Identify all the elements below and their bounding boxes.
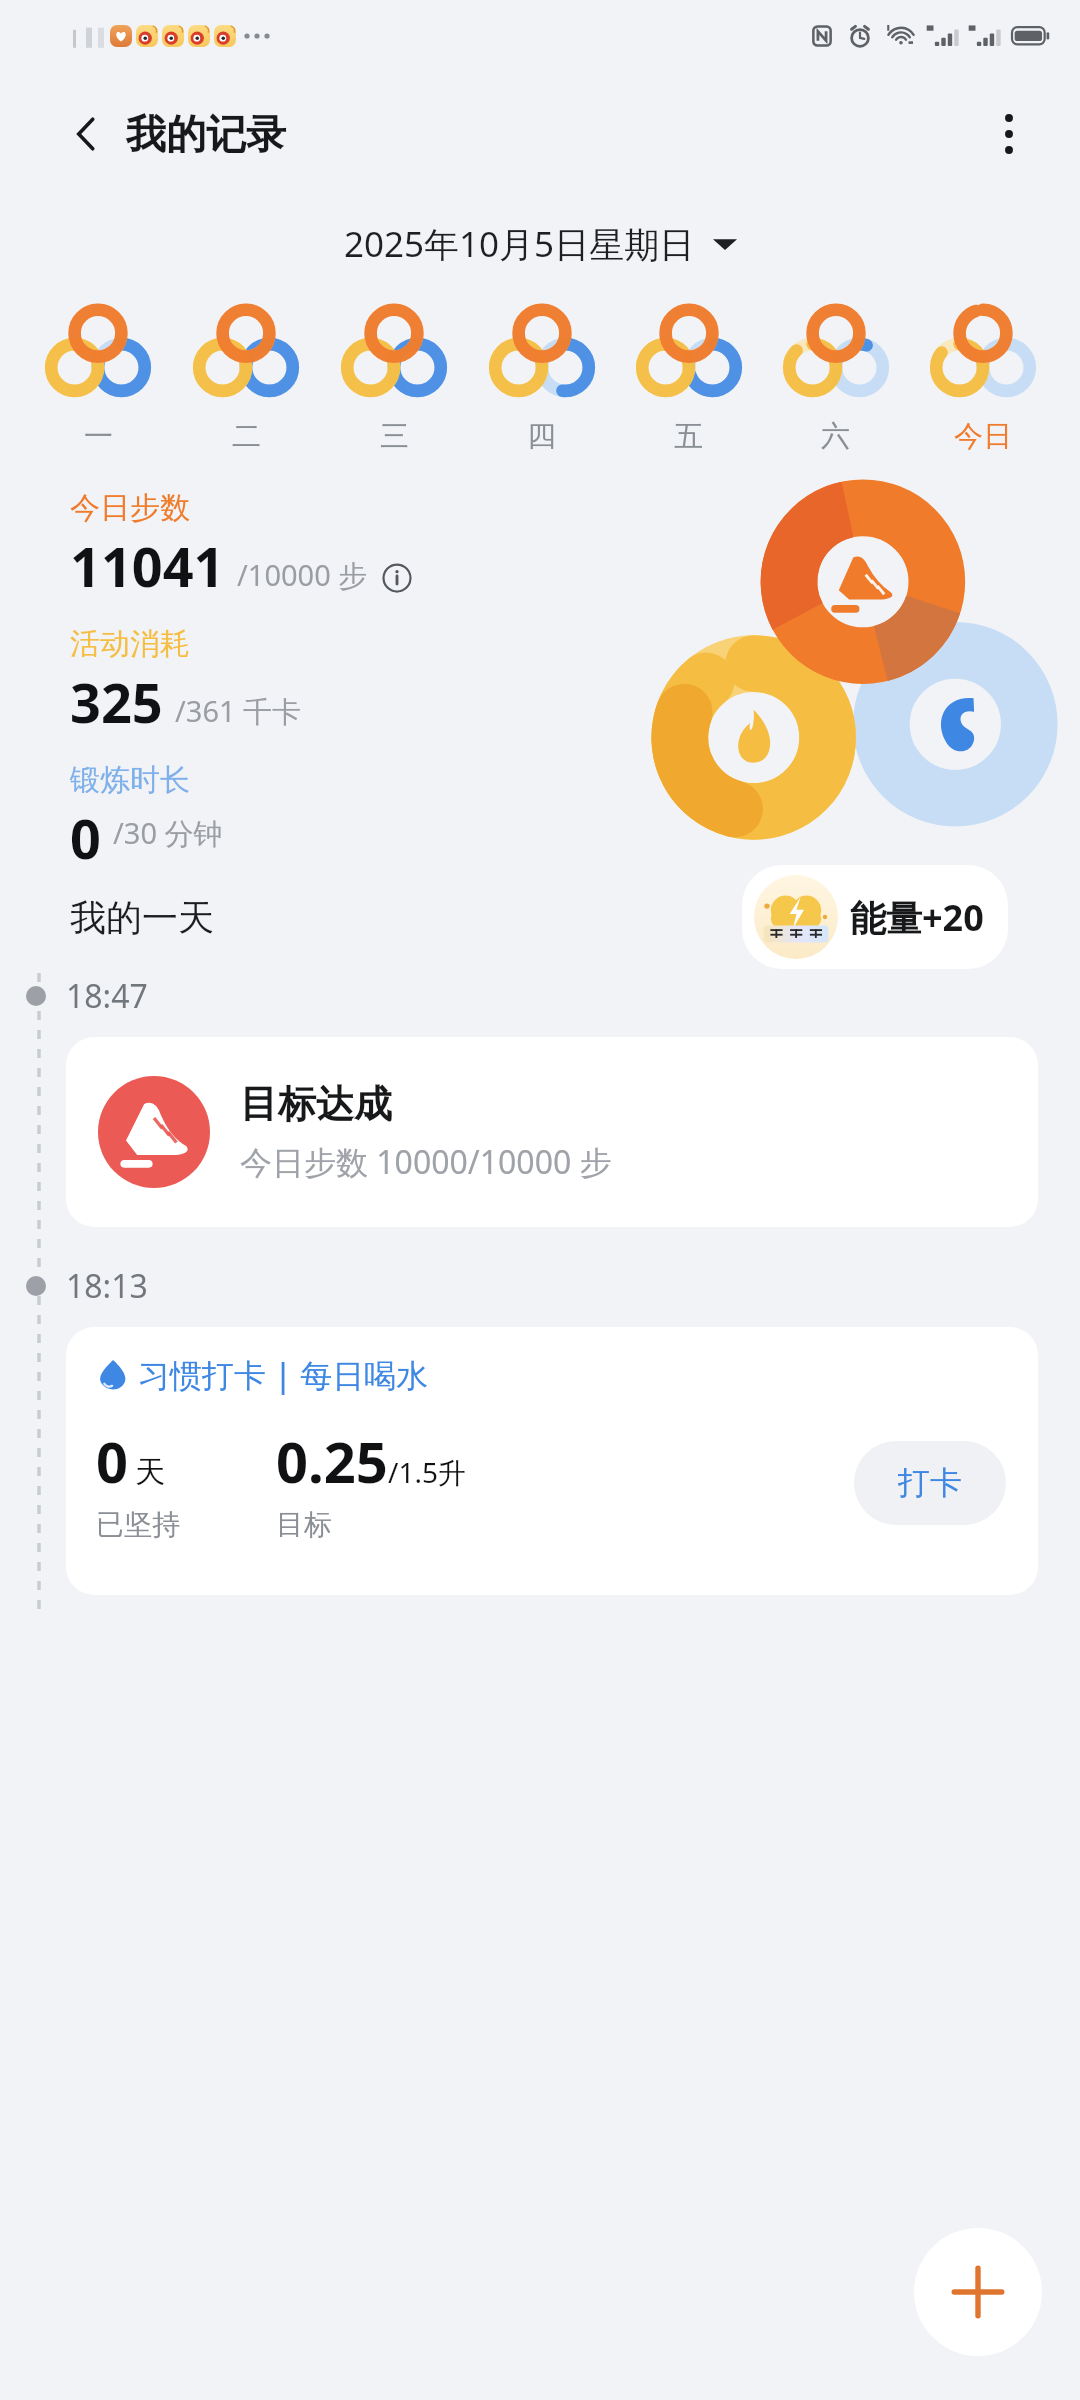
staticText: 18:13 (66, 1264, 148, 1308)
button[interactable]: 习惯打卡 | 每日喝水 (66, 1327, 1038, 1595)
button[interactable]: 目标达成 (66, 1037, 1038, 1227)
staticText: 三 (380, 418, 409, 455)
staticText: 0 (96, 1423, 129, 1499)
button[interactable]: 能量+20 (742, 865, 1008, 969)
staticText: 五 (674, 418, 703, 455)
button[interactable]: 六 (762, 302, 909, 455)
staticText: 18:47 (66, 974, 148, 1018)
staticText: 目标达成 (240, 1080, 392, 1128)
staticText: 一 (84, 418, 113, 455)
button[interactable]: 打卡 (854, 1441, 1006, 1525)
staticText: 0.25 (276, 1423, 388, 1499)
staticText: /10000 步 (237, 555, 368, 595)
button[interactable]: 2025年10月5日星期日 (0, 196, 1080, 292)
staticText: 今日 (954, 418, 1012, 455)
staticText: 目标 (276, 1507, 332, 1542)
staticText: 11041 (70, 529, 225, 603)
staticText: 已坚持 (96, 1507, 180, 1542)
button[interactable]: Back (56, 103, 118, 165)
staticText: 四 (527, 418, 556, 455)
staticText: 锻炼时长 (70, 761, 190, 799)
button[interactable]: Activity rings (634, 481, 1054, 861)
button[interactable]: Info (382, 563, 412, 593)
staticText: 0 (70, 801, 101, 861)
button[interactable]: 二 (172, 302, 320, 455)
staticText: 今日步数 (70, 489, 190, 527)
staticText: 2025年10月5日星期日 (344, 220, 695, 268)
button[interactable]: 四 (468, 302, 615, 455)
staticText: /361 千卡 (175, 691, 302, 731)
staticText: 二 (232, 418, 261, 455)
button[interactable]: 今日 (909, 302, 1056, 455)
button[interactable]: 五 (615, 302, 762, 455)
staticText: 我的记录 (126, 109, 286, 159)
button[interactable]: 三 (320, 302, 468, 455)
staticText: 天 (135, 1453, 165, 1491)
staticText: /1.5升 (388, 1453, 466, 1491)
button[interactable]: More options (978, 103, 1040, 165)
staticText: 习惯打卡 | 每日喝水 (138, 1353, 429, 1397)
staticText: 325 (70, 665, 163, 739)
staticText: 打卡 (898, 1463, 962, 1503)
button[interactable]: Add record (914, 2228, 1042, 2356)
button[interactable]: 一 (24, 302, 172, 455)
staticText: 活动消耗 (70, 625, 190, 663)
staticText: /30 分钟 (113, 813, 223, 853)
staticText: 我的一天 (70, 895, 214, 940)
staticText: 今日步数 10000/10000 步 (240, 1140, 612, 1184)
staticText: 能量+20 (850, 893, 984, 942)
staticText: 六 (821, 418, 850, 455)
